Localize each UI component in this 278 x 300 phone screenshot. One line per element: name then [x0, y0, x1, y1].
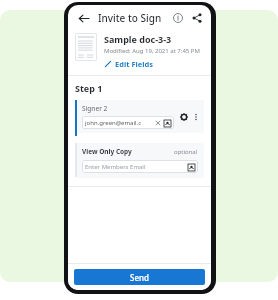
staticText: Invite to Sign — [98, 11, 162, 25]
button[interactable]: Info — [170, 10, 186, 26]
button[interactable]: Settings — [178, 111, 190, 123]
staticText: optional — [174, 148, 198, 156]
button[interactable]: Share — [189, 10, 205, 26]
staticText: View Only Copy — [82, 147, 132, 156]
staticText: Send — [130, 272, 149, 283]
staticText: Edit Fields — [115, 59, 153, 69]
staticText: john.green@email.c — [85, 119, 142, 127]
button[interactable]: Contacts — [163, 119, 171, 127]
staticText: Step 1 — [75, 82, 103, 94]
staticText: Modified: Aug 19, 2021 at 7:45 PM — [104, 47, 200, 55]
button[interactable]: View Only Copy — [77, 143, 204, 178]
button[interactable]: Contacts — [187, 163, 195, 171]
staticText: Sample doc-3-3 — [104, 33, 172, 45]
button[interactable]: Back — [74, 9, 92, 27]
button[interactable]: Edit Fields — [104, 59, 153, 69]
staticText: Signer 2 — [82, 104, 108, 113]
staticText: Enter Members Email — [85, 163, 146, 171]
button[interactable]: Remove — [154, 119, 161, 126]
button[interactable]: Send — [74, 269, 205, 285]
button[interactable]: Signer 2 — [77, 100, 204, 133]
button[interactable]: More options — [190, 111, 202, 123]
